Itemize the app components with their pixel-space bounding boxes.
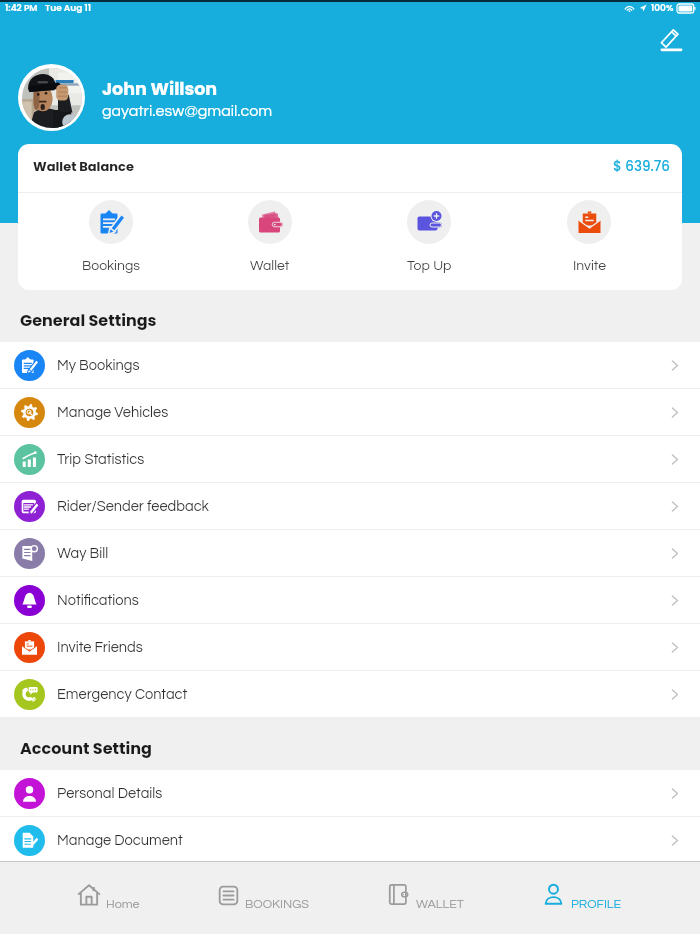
staticText: Top Up xyxy=(407,259,452,273)
button[interactable]: Edit profile xyxy=(657,25,685,53)
staticText: Rider/Sender feedback xyxy=(57,499,209,514)
staticText: Account Setting xyxy=(20,737,152,759)
staticText: 1:42 PM xyxy=(5,2,38,15)
staticText: Manage Document xyxy=(57,833,183,848)
button[interactable]: Wallet xyxy=(190,193,349,290)
button[interactable]: PROFILE xyxy=(542,862,622,934)
staticText: Invite xyxy=(573,259,606,273)
button[interactable]: Rider/Sender feedback xyxy=(0,483,700,529)
staticText: Home xyxy=(106,898,140,911)
staticText: 100% xyxy=(651,2,674,15)
staticText: General Settings xyxy=(20,309,157,331)
button[interactable]: Bookings xyxy=(31,193,190,290)
staticText: Invite Friends xyxy=(57,640,143,655)
button[interactable]: BOOKINGS xyxy=(218,862,309,934)
staticText: Notifications xyxy=(57,593,139,608)
staticText: Personal Details xyxy=(57,786,163,801)
staticText: PROFILE xyxy=(571,898,622,911)
staticText: $ 639.76 xyxy=(613,157,671,176)
staticText: WALLET xyxy=(416,898,464,911)
button[interactable]: Way Bill xyxy=(0,530,700,576)
button[interactable]: Invite Friends xyxy=(0,624,700,670)
button[interactable]: Home xyxy=(78,862,140,934)
button[interactable]: Manage Vehicles xyxy=(0,389,700,435)
staticText: Way Bill xyxy=(57,546,109,561)
button[interactable]: Top Up xyxy=(349,193,509,290)
staticText: gayatri.esw@gmail.com xyxy=(102,103,273,119)
button[interactable]: Notifications xyxy=(0,577,700,623)
button[interactable]: Trip Statistics xyxy=(0,436,700,482)
staticText: BOOKINGS xyxy=(245,898,309,911)
staticText: Trip Statistics xyxy=(57,452,145,467)
staticText: Wallet xyxy=(250,259,290,273)
staticText: My Bookings xyxy=(57,358,140,373)
staticText: Manage Vehicles xyxy=(57,405,169,420)
button[interactable]: Manage Document xyxy=(0,817,700,863)
button[interactable]: Invite xyxy=(509,193,669,290)
staticText: John Willson xyxy=(102,77,218,102)
staticText: Bookings xyxy=(82,259,140,273)
button[interactable]: Emergency Contact xyxy=(0,671,700,717)
button[interactable]: My Bookings xyxy=(0,342,700,388)
button[interactable]: Personal Details xyxy=(0,770,700,816)
staticText: Tue Aug 11 xyxy=(45,2,91,15)
staticText: Emergency Contact xyxy=(57,687,188,702)
button[interactable]: WALLET xyxy=(387,862,464,934)
staticText: Wallet Balance xyxy=(33,157,134,175)
